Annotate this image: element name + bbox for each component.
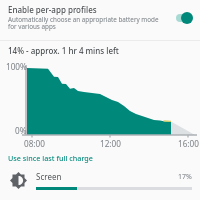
staticText: 08:00 bbox=[24, 138, 45, 149]
button[interactable]: Toggle per-app profiles bbox=[176, 11, 193, 25]
staticText: 17% bbox=[178, 172, 192, 182]
staticText: 12:00 bbox=[100, 138, 121, 149]
button[interactable]: Screen bbox=[0, 171, 200, 190]
staticText: Automatically choose an appropriate batt… bbox=[8, 15, 164, 31]
staticText: 14% - approx. 1 hr 4 mins left bbox=[8, 45, 119, 56]
staticText: Enable per-app profiles bbox=[8, 4, 97, 15]
staticText: Screen bbox=[36, 171, 62, 182]
staticText: 16:00 bbox=[178, 138, 199, 149]
staticText: 100% bbox=[6, 61, 27, 72]
button[interactable]: Enable per-app profiles bbox=[0, 0, 200, 40]
staticText: 0% bbox=[15, 125, 27, 136]
staticText: Use since last full charge bbox=[8, 153, 93, 163]
